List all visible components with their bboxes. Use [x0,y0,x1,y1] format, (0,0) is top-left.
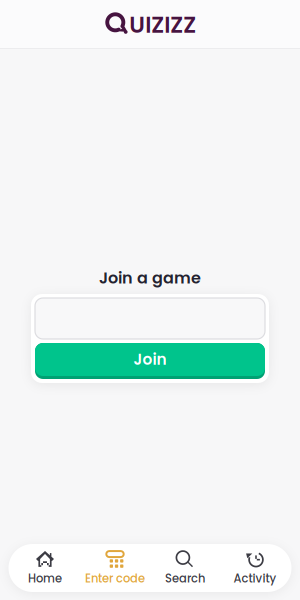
staticText: Join a game [99,267,201,289]
staticText: UIZIZZ [129,9,196,41]
button[interactable]: Enter code [80,544,150,592]
staticText: Enter code [85,570,145,587]
button[interactable]: Activity [220,544,290,592]
staticText: Search [165,570,205,587]
button[interactable]: Search [150,544,220,592]
button[interactable]: Home [10,544,80,592]
button[interactable]: Join [35,343,265,379]
staticText: Home [28,570,62,587]
staticText: Activity [233,570,276,587]
staticText: Join [133,349,166,370]
